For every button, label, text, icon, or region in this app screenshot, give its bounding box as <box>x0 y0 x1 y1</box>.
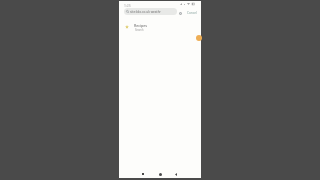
staticText: Cancel <box>187 11 197 15</box>
button[interactable]: Recent apps <box>139 170 147 178</box>
button[interactable]: Back <box>172 170 180 178</box>
button[interactable]: Search <box>124 8 177 15</box>
button[interactable]: Clear search <box>177 10 183 16</box>
other: Search <box>126 10 129 13</box>
staticText: site:bbc.co.uk weathr <box>130 10 161 14</box>
staticText: Recipes <box>134 23 148 28</box>
button[interactable]: Recipes <box>119 20 201 33</box>
staticText: Search <box>135 28 144 32</box>
button[interactable]: Home <box>156 170 164 178</box>
staticText: 1:25 <box>124 3 131 7</box>
button[interactable]: Cancel <box>186 10 198 16</box>
button[interactable]: New <box>196 35 202 41</box>
